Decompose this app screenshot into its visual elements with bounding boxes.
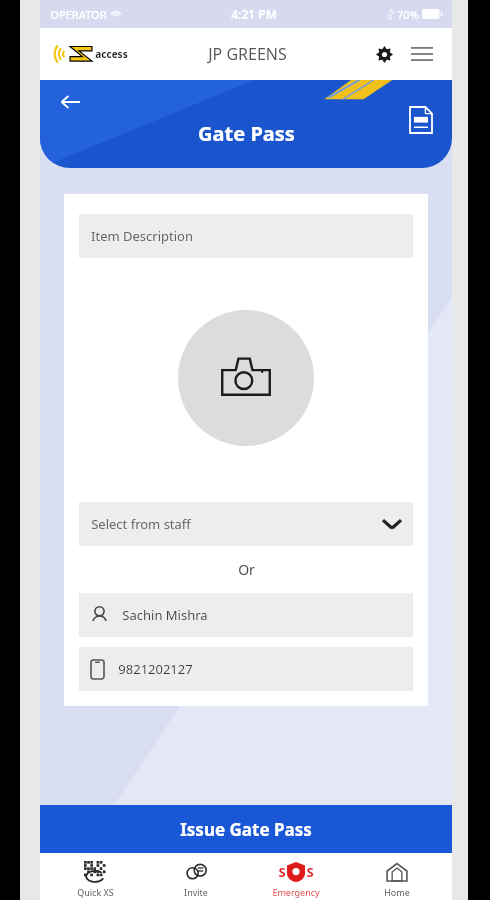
- button[interactable]: 9821202127: [79, 647, 413, 691]
- staticText: Invite: [184, 886, 208, 898]
- staticText: Sachin Mishra: [122, 606, 208, 624]
- staticText: 4:21 PM: [231, 6, 277, 22]
- button[interactable]: Invite: [151, 860, 241, 898]
- button[interactable]: Back: [52, 84, 88, 120]
- button[interactable]: Quick XS: [50, 860, 140, 898]
- button[interactable]: Sachin Mishra: [79, 593, 413, 637]
- staticText: S: [306, 863, 314, 881]
- staticText: 70%: [397, 7, 419, 22]
- button[interactable]: Home: [352, 860, 442, 898]
- staticText: S: [278, 863, 286, 881]
- button[interactable]: Gate pass log: [404, 103, 438, 137]
- staticText: access: [95, 47, 128, 61]
- button[interactable]: Item Description: [79, 214, 413, 258]
- staticText: Or: [238, 560, 255, 579]
- staticText: JP GREENS: [208, 43, 287, 65]
- staticText: 9821202127: [118, 660, 193, 678]
- staticText: Gate Pass: [198, 120, 295, 147]
- staticText: Emergency: [272, 886, 320, 898]
- staticText: Issue Gate Pass: [180, 818, 312, 841]
- button[interactable]: Take photo: [178, 310, 314, 446]
- button[interactable]: S: [251, 860, 341, 898]
- button[interactable]: Issue Gate Pass: [40, 805, 452, 853]
- staticText: Quick XS: [77, 886, 114, 898]
- button[interactable]: Select from staff: [79, 502, 413, 546]
- button[interactable]: Settings: [368, 38, 400, 70]
- staticText: OPERATOR: [50, 7, 107, 22]
- staticText: Select from staff: [91, 515, 191, 533]
- staticText: Item Description: [91, 227, 193, 245]
- button[interactable]: Menu: [406, 38, 438, 70]
- staticText: Home: [384, 886, 410, 898]
